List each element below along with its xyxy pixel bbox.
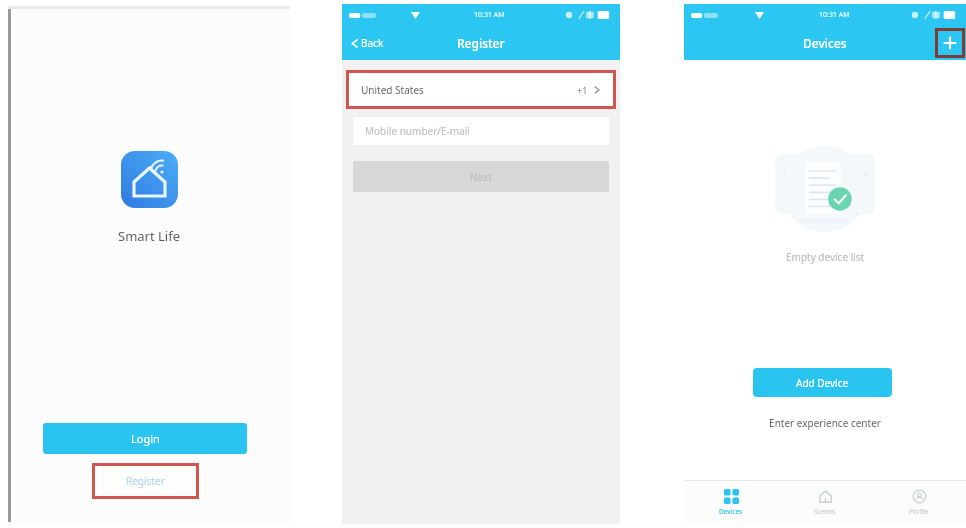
staticText: Devices <box>719 507 743 516</box>
staticText: +1 <box>577 84 588 96</box>
button[interactable]: Back <box>347 31 387 55</box>
staticText: Smart Life <box>118 227 180 245</box>
staticText: Next <box>470 170 492 184</box>
staticText: Empty device list <box>786 250 865 264</box>
staticText: United States <box>361 83 424 97</box>
staticText: 10:31 AM <box>819 10 850 20</box>
staticText: Login <box>131 431 160 446</box>
button[interactable]: Login <box>43 423 247 454</box>
button[interactable]: Mobile number/E-mail <box>353 117 609 145</box>
staticText: 10:31 AM <box>474 10 505 20</box>
staticText: Scenes <box>814 507 836 516</box>
button[interactable]: Add Device <box>753 368 892 397</box>
button[interactable]: Add device <box>935 28 965 58</box>
button[interactable]: Register <box>92 463 199 499</box>
staticText: Devices <box>803 35 847 51</box>
staticText: Enter experience center <box>684 416 966 430</box>
staticText: Register <box>126 474 165 488</box>
staticText: Add Device <box>796 376 849 390</box>
staticText: Profile <box>909 507 929 516</box>
button[interactable]: United States <box>346 70 616 109</box>
staticText: Mobile number/E-mail <box>365 124 470 138</box>
button[interactable]: Devices <box>684 481 778 524</box>
button[interactable]: Profile <box>872 481 966 524</box>
staticText: Register <box>457 35 505 51</box>
button[interactable]: Scenes <box>778 481 872 524</box>
staticText: Back <box>361 36 384 50</box>
